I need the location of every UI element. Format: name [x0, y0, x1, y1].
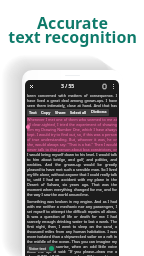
button[interactable]: More options: [109, 82, 118, 91]
staticText: Whenever I met one of them who seemed to…: [27, 117, 117, 152]
button[interactable]: Copy: [39, 110, 53, 115]
button[interactable]: Text: [27, 110, 39, 115]
button[interactable]: Select all: [68, 110, 89, 115]
staticText: Share: [55, 110, 66, 115]
staticText: Dictionary: [91, 109, 107, 116]
button[interactable]: Close: [27, 82, 36, 91]
button[interactable]: Copy page: [100, 82, 109, 91]
staticText: Something was broken in my engine. And a…: [27, 199, 117, 256]
button[interactable]: Voice text: [27, 244, 56, 252]
button[interactable]: Share: [53, 110, 68, 115]
staticText: 3 / 55: [61, 83, 75, 90]
staticText: Copy: [41, 110, 51, 115]
staticText: Accurate text recognition: [8, 12, 137, 48]
staticText: Select all: [70, 110, 87, 115]
staticText: Text: [29, 110, 37, 115]
staticText: I would bring myself down to his level. …: [27, 152, 117, 197]
staticText: Voice text: [29, 246, 47, 251]
button[interactable]: Dictionary: [89, 109, 109, 116]
staticText: been concerned with matters of consequen…: [27, 93, 117, 108]
